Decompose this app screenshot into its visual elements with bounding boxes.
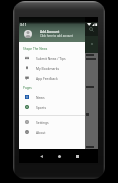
button[interactable]: Settings <box>19 117 85 127</box>
button[interactable]: News <box>19 92 85 102</box>
staticText: Shape The News <box>23 47 48 51</box>
button[interactable]: Back <box>35 149 48 163</box>
button[interactable]: About <box>19 127 85 137</box>
staticText: My Bookmarks <box>36 66 60 70</box>
button[interactable]: My Bookmarks <box>19 63 85 73</box>
staticText: Add Account <box>40 30 60 34</box>
staticText: 3:11 <box>20 22 27 27</box>
staticText: Submit News / Tips <box>36 56 66 60</box>
button[interactable]: Submit News / Tips <box>19 53 85 63</box>
staticText: Settings <box>36 120 49 124</box>
staticText: Sports <box>36 105 46 109</box>
button[interactable]: Sports <box>19 102 85 112</box>
staticText: Click here to add account <box>40 34 74 38</box>
button[interactable]: Recent apps <box>71 149 84 163</box>
staticText: About <box>36 130 46 134</box>
button[interactable]: App Feedback <box>19 73 85 83</box>
staticText: News <box>36 95 45 99</box>
button[interactable]: Add Account <box>19 17 85 42</box>
staticText: Pages <box>23 86 32 90</box>
staticText: App Feedback <box>36 76 58 80</box>
button[interactable]: Home <box>53 149 66 163</box>
